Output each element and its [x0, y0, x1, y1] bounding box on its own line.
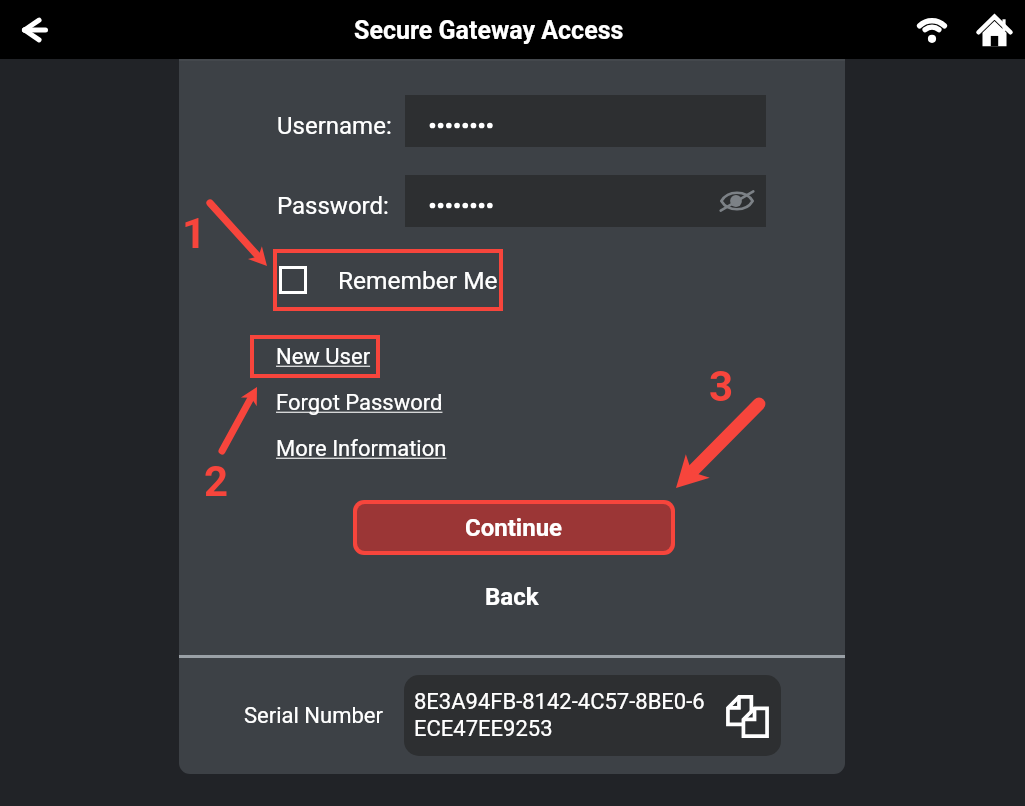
button[interactable]: Remember Me	[277, 253, 499, 307]
staticText: Back	[485, 583, 539, 611]
staticText: Secure Gateway Access	[354, 16, 624, 45]
button[interactable]	[405, 95, 766, 147]
staticText: 8E3A94FB-8142-4C57-8BE0-6 ECE47EE9253	[414, 689, 705, 742]
button[interactable]: Wifi	[910, 8, 954, 52]
button[interactable]: Home	[972, 8, 1016, 52]
staticText: Continue	[465, 514, 563, 542]
staticText: Serial Number	[244, 703, 383, 729]
button[interactable]: Forgot Password	[276, 390, 443, 416]
button[interactable]: New User	[276, 344, 371, 370]
staticText: Password:	[277, 192, 389, 220]
staticText: 2	[204, 457, 229, 506]
staticText: 3	[709, 362, 734, 411]
staticText: More Information	[276, 436, 447, 462]
staticText: 1	[182, 209, 207, 258]
button[interactable]: More Information	[276, 436, 447, 462]
button[interactable]: Show password	[405, 175, 766, 227]
staticText: Remember Me	[338, 266, 498, 295]
staticText: New User	[276, 344, 371, 370]
staticText: Username:	[277, 112, 392, 140]
button[interactable]: 8E3A94FB-8142-4C57-8BE0-6 ECE47EE9253	[404, 675, 781, 756]
staticText: Forgot Password	[276, 390, 443, 416]
button[interactable]: Back	[485, 583, 539, 611]
button[interactable]: Back	[12, 7, 58, 53]
button[interactable]: Show password	[716, 180, 758, 222]
button[interactable]: Continue	[357, 504, 671, 551]
button[interactable]: Copy serial number	[724, 693, 770, 739]
